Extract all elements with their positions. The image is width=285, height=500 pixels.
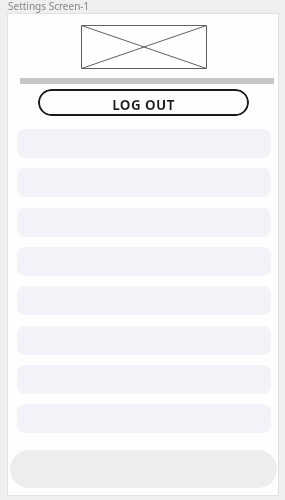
button[interactable]: LOG OUT [38,89,249,116]
staticText: Settings Screen-1 [8,0,90,13]
other: Image placeholder [81,25,208,70]
staticText: LOG OUT [112,96,175,114]
